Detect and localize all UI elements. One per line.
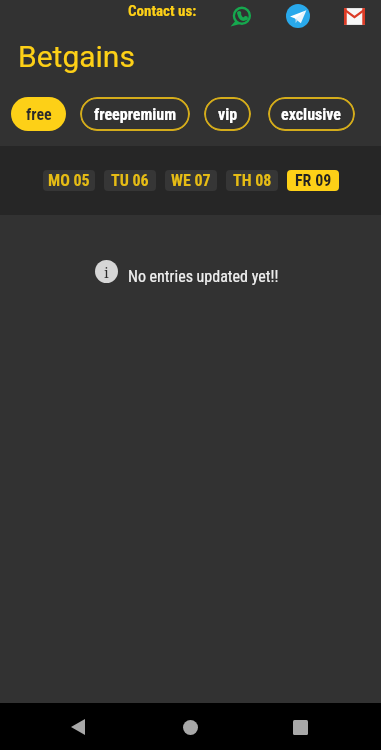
button[interactable]: Telegram: [283, 1, 313, 31]
button[interactable]: vip: [204, 97, 251, 131]
staticText: No entries updated yet!!: [128, 267, 279, 286]
button[interactable]: TU 06: [104, 170, 156, 191]
staticText: vip: [218, 105, 238, 124]
button[interactable]: Back: [56, 705, 100, 749]
staticText: TH 08: [233, 171, 272, 190]
staticText: WE 07: [171, 171, 211, 190]
button[interactable]: Recents: [278, 705, 322, 749]
staticText: FR 09: [295, 171, 332, 190]
button[interactable]: WhatsApp: [226, 1, 256, 31]
button[interactable]: MO 05: [43, 170, 95, 191]
button[interactable]: free: [11, 97, 66, 131]
staticText: Contact us:: [128, 2, 197, 20]
button[interactable]: freepremium: [80, 97, 190, 131]
staticText: Betgains: [18, 39, 381, 74]
staticText: i: [104, 262, 109, 282]
button[interactable]: TH 08: [226, 170, 278, 191]
button[interactable]: Gmail: [339, 1, 369, 31]
button[interactable]: exclusive: [268, 97, 355, 131]
button[interactable]: WE 07: [165, 170, 217, 191]
button[interactable]: Home: [168, 705, 212, 749]
staticText: freepremium: [94, 105, 177, 124]
staticText: exclusive: [281, 105, 342, 124]
staticText: free: [26, 105, 52, 124]
staticText: TU 06: [111, 171, 149, 190]
button[interactable]: FR 09: [287, 170, 339, 191]
staticText: MO 05: [48, 171, 90, 190]
